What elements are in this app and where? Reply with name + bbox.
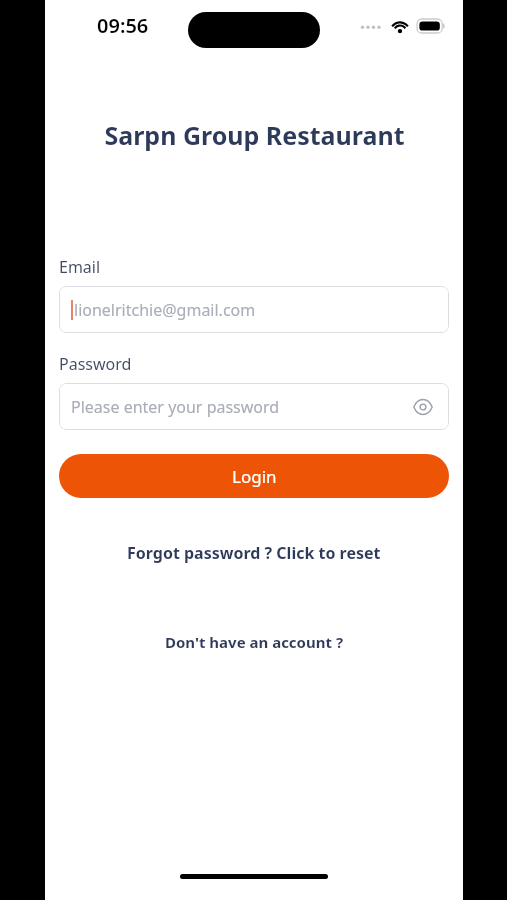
staticText: lionelritchie@gmail.com [74, 299, 256, 321]
button[interactable]: Forgot password ? Click to reset [59, 536, 449, 570]
staticText: Forgot password ? Click to reset [127, 542, 381, 564]
button[interactable]: Login [59, 454, 449, 498]
staticText: Email [59, 256, 101, 278]
staticText: 09:56 [97, 12, 149, 39]
button[interactable]: Don't have an account ? [59, 626, 449, 658]
staticText: Sarpn Group Restaurant [104, 118, 405, 152]
staticText: Please enter your password [71, 396, 280, 418]
button[interactable]: lionelritchie@gmail.com [59, 286, 449, 333]
button[interactable]: Show password [409, 393, 437, 421]
staticText: Don't have an account ? [165, 632, 344, 652]
staticText: Password [59, 353, 132, 375]
staticText: Login [232, 465, 277, 488]
button[interactable]: Please enter your password [59, 383, 449, 430]
